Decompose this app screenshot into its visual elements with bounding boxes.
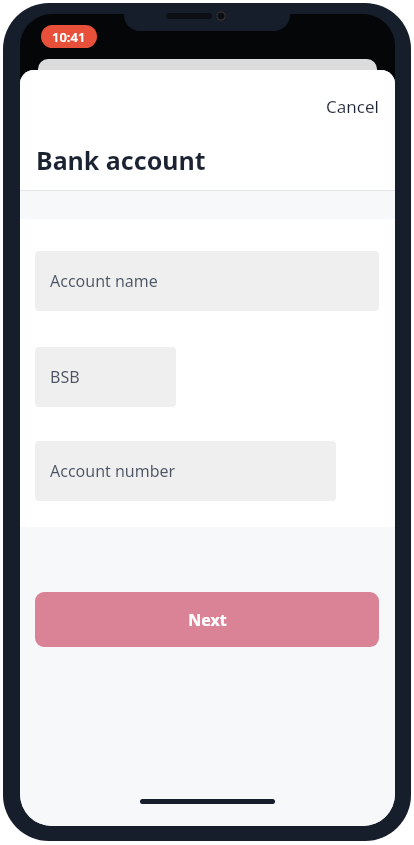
button[interactable]: Account number: [35, 441, 336, 501]
staticText: Next: [188, 609, 227, 631]
staticText: Account name: [50, 270, 158, 292]
button[interactable]: Next: [35, 592, 379, 647]
other: Notch: [124, 3, 290, 31]
button[interactable]: Cancel: [312, 89, 393, 124]
staticText: Cancel: [326, 95, 379, 118]
staticText: Account number: [50, 460, 176, 482]
staticText: Bank account: [36, 143, 206, 177]
staticText: BSB: [50, 366, 80, 388]
button[interactable]: Account name: [35, 251, 379, 311]
button[interactable]: BSB: [35, 347, 176, 407]
staticText: 10:41: [52, 28, 86, 46]
